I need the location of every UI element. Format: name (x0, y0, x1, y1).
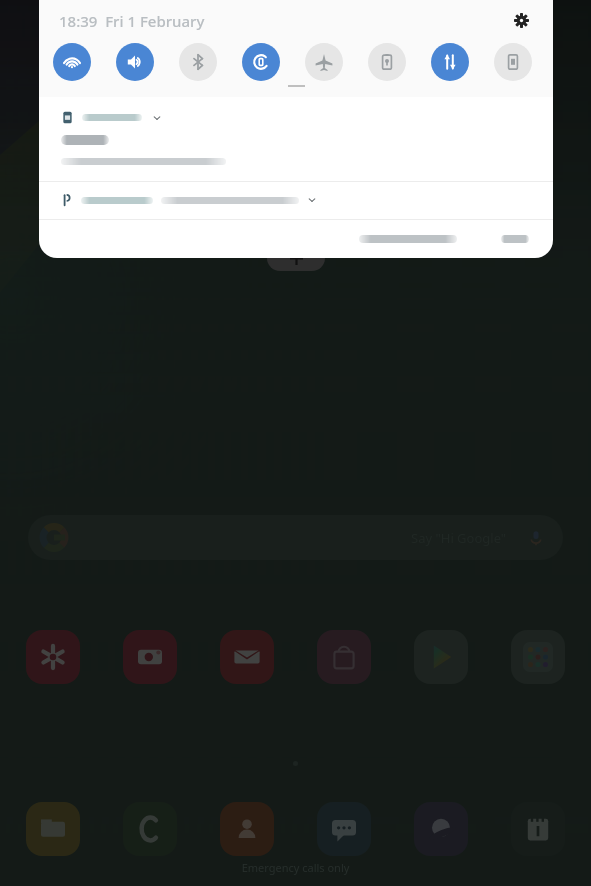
button[interactable]: Clear (495, 229, 535, 249)
button[interactable]: SOUND (116, 43, 154, 81)
button[interactable]: SIM (494, 43, 532, 81)
button[interactable]: INTERNET (414, 802, 468, 856)
button[interactable]: GALLERY (26, 630, 80, 684)
button[interactable]: Settings (508, 7, 535, 34)
button[interactable]: EMAIL (220, 630, 274, 684)
button[interactable]: ROTATE (242, 43, 280, 81)
button[interactable]: BATTERY (368, 43, 406, 81)
button[interactable]: CAMERA (123, 630, 177, 684)
button[interactable]: WIFI (53, 43, 91, 81)
other: Voice search (527, 529, 545, 547)
button[interactable]: FOLDER (511, 630, 565, 684)
button[interactable]: CALENDAR (511, 802, 565, 856)
button[interactable]: STORE (317, 630, 371, 684)
button[interactable]: MESSAGES (317, 802, 371, 856)
staticText: 18:39 Fri 1 February (59, 11, 205, 31)
button[interactable] (39, 182, 553, 219)
button[interactable] (39, 97, 553, 181)
button[interactable]: Notification settings (353, 229, 463, 249)
button[interactable]: CONTACTS (220, 802, 274, 856)
button[interactable]: PHONE (123, 802, 177, 856)
button[interactable]: Add widget (267, 245, 325, 271)
button[interactable]: FILES (26, 802, 80, 856)
button[interactable]: DATA (431, 43, 469, 81)
button[interactable]: PLANE (305, 43, 343, 81)
button[interactable]: BT (179, 43, 217, 81)
button[interactable]: PLAY (414, 630, 468, 684)
